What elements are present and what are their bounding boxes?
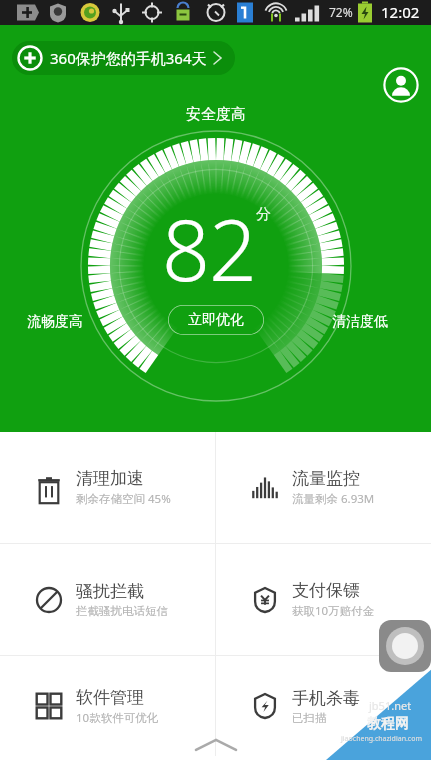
staticText: 手机杀毒 xyxy=(292,688,360,709)
button[interactable]: Account xyxy=(383,67,419,103)
button[interactable]: 360保护您的手机364天 xyxy=(12,41,235,75)
staticText: 骚扰拦截 xyxy=(76,581,144,602)
staticText: 流畅度高 xyxy=(27,313,83,331)
staticText: 获取10万赔付金 xyxy=(292,603,375,619)
staticText: 流量监控 xyxy=(292,468,360,489)
staticText: 分 xyxy=(256,205,271,224)
staticText: 流量剩余 6.93M xyxy=(292,491,375,507)
staticText: 清洁度低 xyxy=(332,313,388,331)
button[interactable]: 骚扰拦截 xyxy=(0,544,215,655)
staticText: 72% xyxy=(329,4,353,20)
staticText: 360保护您的手机364天 xyxy=(50,48,207,68)
staticText: 教程网 xyxy=(367,715,409,733)
button[interactable]: 立即优化 xyxy=(168,305,264,335)
staticText: 已扫描 xyxy=(292,711,327,725)
button[interactable]: 流量监控 xyxy=(216,432,431,543)
staticText: 拦截骚扰电话短信 xyxy=(76,604,168,618)
button[interactable]: 软件管理 xyxy=(0,656,215,756)
staticText: jiaocheng.chazidian.com xyxy=(341,734,423,744)
button[interactable]: 手机杀毒 xyxy=(216,656,431,756)
staticText: 支付保镖 xyxy=(292,580,360,601)
staticText: 安全度高 xyxy=(186,105,246,124)
button[interactable]: Assistive touch xyxy=(379,620,431,672)
staticText: jb51.net xyxy=(369,698,412,713)
staticText: 立即优化 xyxy=(188,311,244,329)
staticText: 10款软件可优化 xyxy=(76,710,159,726)
staticText: 12:02 xyxy=(381,2,420,22)
staticText: 清理加速 xyxy=(76,468,144,489)
staticText: 剩余存储空间 45% xyxy=(76,491,171,507)
button[interactable]: 清理加速 xyxy=(0,432,215,543)
button[interactable]: 支付保镖 xyxy=(216,544,431,655)
staticText: 软件管理 xyxy=(76,687,144,708)
staticText: 82 xyxy=(162,191,256,305)
